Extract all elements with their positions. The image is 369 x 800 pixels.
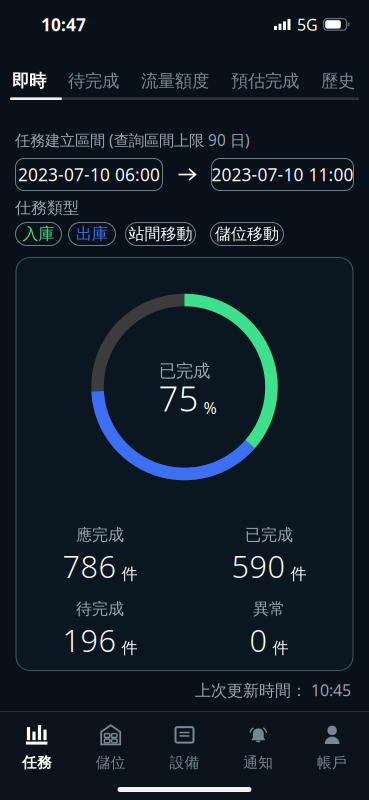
staticText: 件 bbox=[121, 638, 137, 658]
button[interactable]: 2023-07-10 06:00 bbox=[15, 158, 163, 191]
staticText: 5G bbox=[297, 14, 318, 35]
staticText: 786 bbox=[62, 545, 116, 587]
staticText: 儲位 bbox=[96, 753, 126, 772]
button[interactable]: 儲位 bbox=[74, 724, 148, 777]
staticText: 0 bbox=[249, 619, 267, 661]
staticText: 590 bbox=[231, 545, 285, 587]
staticText: 2023-07-10 06:00 bbox=[18, 163, 160, 186]
staticText: 預估完成 bbox=[231, 70, 299, 92]
staticText: 已完成 bbox=[159, 360, 210, 382]
staticText: 儲位移動 bbox=[215, 224, 279, 244]
staticText: 歷史 bbox=[321, 70, 355, 92]
button[interactable]: 站間移動 bbox=[125, 222, 196, 246]
staticText: 任務建立區間 (查詢區間上限 90 日) bbox=[15, 130, 250, 150]
staticText: 待完成 bbox=[76, 599, 124, 619]
button[interactable]: 即時 bbox=[12, 66, 46, 96]
staticText: 上次更新時間： 10:45 bbox=[195, 679, 351, 701]
button[interactable]: 預估完成 bbox=[231, 66, 299, 96]
staticText: 異常 bbox=[253, 599, 285, 619]
staticText: 196 bbox=[62, 619, 116, 661]
button[interactable]: 設備 bbox=[148, 724, 221, 777]
button[interactable]: 儲位移動 bbox=[210, 222, 284, 246]
button[interactable]: 出庫 bbox=[68, 222, 116, 246]
staticText: 待完成 bbox=[68, 70, 119, 92]
staticText: 入庫 bbox=[22, 224, 54, 244]
staticText: 10:47 bbox=[41, 13, 86, 36]
button[interactable]: 入庫 bbox=[15, 222, 62, 246]
button[interactable]: 通知 bbox=[221, 724, 295, 777]
button[interactable]: 2023-07-10 11:00 bbox=[211, 158, 354, 191]
staticText: 設備 bbox=[169, 753, 199, 772]
staticText: 仕務類型 bbox=[15, 198, 79, 218]
button[interactable]: 任務 bbox=[0, 724, 74, 777]
button[interactable]: 流量額度 bbox=[141, 66, 209, 96]
button[interactable]: 歷史 bbox=[321, 66, 355, 96]
staticText: 件 bbox=[290, 564, 306, 584]
staticText: 出庫 bbox=[76, 224, 108, 244]
staticText: 任務 bbox=[22, 753, 52, 772]
button[interactable]: 帳戶 bbox=[295, 724, 369, 777]
staticText: 件 bbox=[272, 638, 288, 658]
staticText: 件 bbox=[121, 564, 137, 584]
staticText: 即時 bbox=[12, 70, 46, 92]
staticText: 通知 bbox=[243, 753, 273, 772]
staticText: 站間移動 bbox=[128, 224, 192, 244]
staticText: 帳戶 bbox=[317, 753, 347, 772]
staticText: 已完成 bbox=[245, 525, 293, 545]
staticText: 2023-07-10 11:00 bbox=[211, 163, 353, 186]
staticText: 流量額度 bbox=[141, 70, 209, 92]
button[interactable]: 待完成 bbox=[68, 66, 119, 96]
staticText: % bbox=[203, 397, 216, 419]
staticText: 75 bbox=[158, 374, 198, 422]
staticText: 應完成 bbox=[76, 525, 124, 545]
